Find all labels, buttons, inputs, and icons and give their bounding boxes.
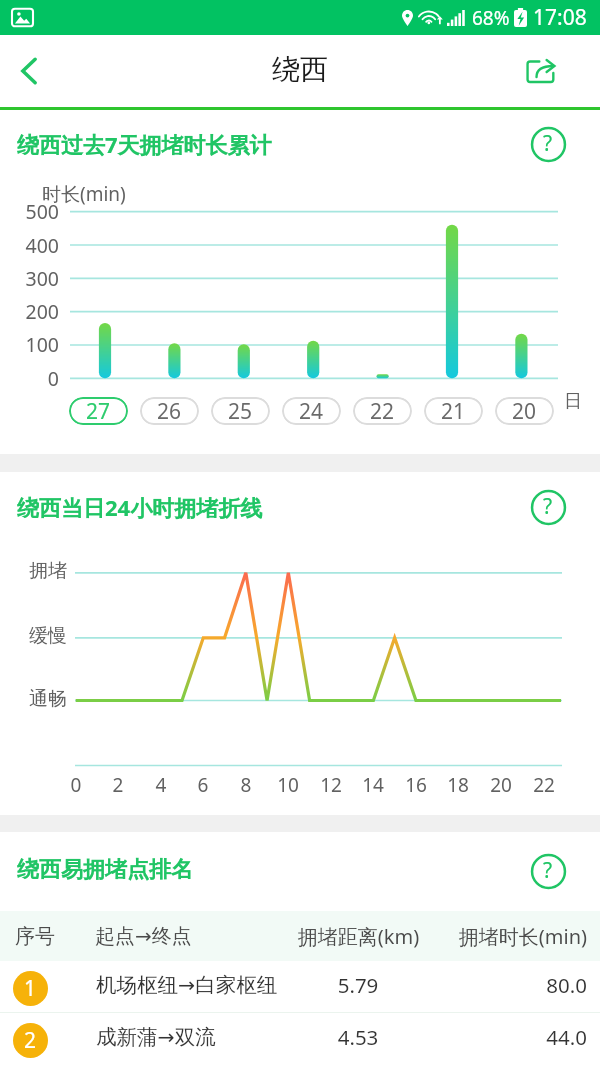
staticText: 序号 (15, 924, 55, 949)
staticText: 0 (56, 772, 96, 798)
button[interactable]: 24 (282, 397, 341, 425)
staticText: 通畅 (0, 687, 67, 711)
staticText: 绕西 (272, 52, 328, 87)
staticText: 16 (396, 772, 436, 798)
staticText: 0 (0, 365, 59, 392)
button[interactable]: 2 (0, 1013, 600, 1065)
staticText: 20 (481, 772, 521, 798)
staticText: 21 (441, 397, 466, 425)
staticText: 拥堵时长(min) (447, 923, 587, 950)
staticText: 17:08 (533, 3, 587, 32)
button[interactable]: 21 (424, 397, 483, 425)
staticText: 2 (98, 772, 138, 798)
staticText: 绕西当日24小时拥堵折线 (17, 492, 263, 522)
staticText: 44.0 (447, 1023, 587, 1051)
button[interactable]: 20 (495, 397, 554, 425)
staticText: 20 (512, 397, 537, 425)
button[interactable]: Help (525, 484, 571, 530)
staticText: 绕西易拥堵点排名 (17, 856, 193, 884)
button[interactable]: 25 (211, 397, 270, 425)
staticText: 27 (86, 397, 111, 425)
staticText: 68% (472, 5, 510, 31)
staticText: 时长(min) (42, 181, 126, 207)
staticText: 22 (370, 397, 395, 425)
staticText: 5.79 (258, 971, 458, 999)
staticText: 缓慢 (0, 624, 67, 648)
staticText: 14 (353, 772, 393, 798)
staticText: 绕西过去7天拥堵时长累计 (17, 129, 272, 159)
staticText: 1 (24, 974, 37, 1003)
staticText: 8 (226, 772, 266, 798)
button[interactable]: 1 (0, 961, 600, 1013)
staticText: 拥堵距离(km) (258, 923, 459, 950)
button[interactable]: Help (525, 121, 571, 167)
staticText: ? (543, 129, 553, 158)
staticText: 10 (268, 772, 308, 798)
staticText: 100 (0, 331, 59, 358)
staticText: 机场枢纽→白家枢纽 (96, 972, 278, 998)
staticText: 26 (157, 397, 182, 425)
staticText: 500 (0, 198, 59, 225)
staticText: 拥堵 (0, 559, 67, 583)
staticText: 2 (24, 1026, 37, 1055)
staticText: 25 (228, 397, 253, 425)
staticText: 成新蒲→双流 (96, 1024, 216, 1050)
button[interactable]: 26 (140, 397, 199, 425)
staticText: 日 (564, 390, 582, 413)
staticText: 12 (311, 772, 351, 798)
button[interactable]: 22 (353, 397, 412, 425)
staticText: 起点→终点 (95, 924, 192, 949)
staticText: 4 (141, 772, 181, 798)
staticText: 4.53 (258, 1023, 458, 1051)
staticText: 24 (299, 397, 324, 425)
staticText: 200 (0, 298, 59, 325)
button[interactable]: 27 (69, 397, 128, 425)
staticText: 18 (438, 772, 478, 798)
button[interactable]: Help (525, 848, 571, 894)
staticText: 22 (524, 772, 564, 798)
staticText: ? (543, 492, 553, 521)
staticText: ? (543, 856, 553, 885)
button[interactable]: Back (0, 43, 56, 99)
staticText: 6 (183, 772, 223, 798)
staticText: 80.0 (447, 971, 587, 999)
staticText: 300 (0, 265, 59, 292)
button[interactable]: Share (514, 44, 568, 98)
staticText: 400 (0, 232, 59, 259)
